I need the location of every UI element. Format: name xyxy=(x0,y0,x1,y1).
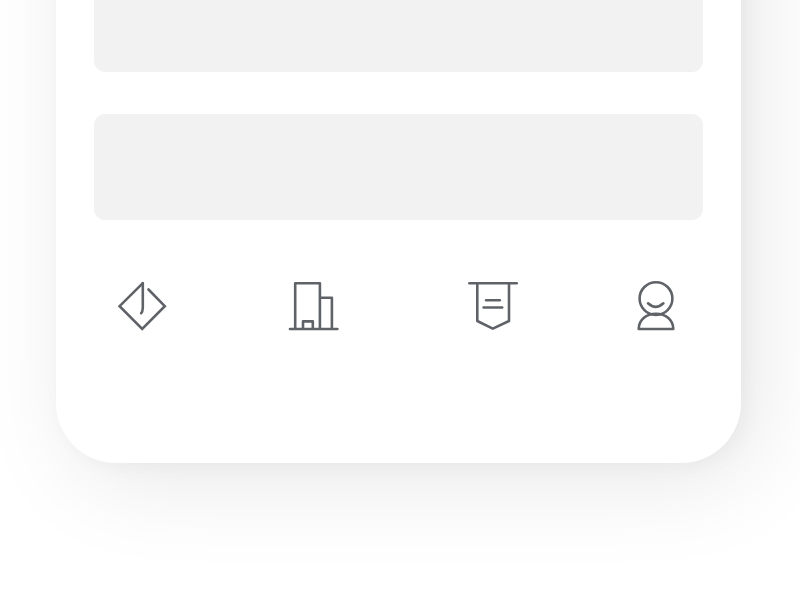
button[interactable]: Home xyxy=(56,258,228,354)
button[interactable]: Saved xyxy=(399,258,570,354)
button[interactable]: Profile xyxy=(570,258,741,354)
button[interactable]: Properties xyxy=(228,258,399,354)
